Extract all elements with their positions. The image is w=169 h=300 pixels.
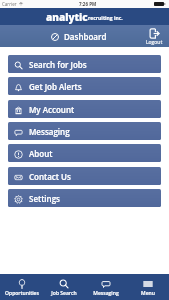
staticText: Menu [141,290,155,297]
staticText: recruiting inc. [88,15,123,22]
staticText: About [29,148,53,159]
button[interactable]: About [8,144,161,162]
staticText: Job Search [51,290,77,297]
staticText: Contact Us [29,171,71,182]
button[interactable]: Opportunities [0,274,43,300]
button[interactable]: Job Search [43,274,85,300]
staticText: Messaging [29,126,70,137]
button[interactable]: My Account [8,100,161,118]
button[interactable]: Messaging [8,122,161,140]
staticText: Dashboard [64,31,107,42]
staticText: Opportunities [5,290,39,297]
staticText: Logout [146,39,163,46]
button[interactable]: Settings [8,189,161,207]
staticText: Get Job Alerts [29,81,82,92]
staticText: Carrier [2,1,17,7]
button[interactable]: Logout [146,28,169,46]
button[interactable]: Contact Us [8,167,161,185]
button[interactable]: Messaging [85,274,127,300]
button[interactable]: Search for Jobs [8,55,161,73]
staticText: Settings [29,193,60,204]
staticText: 7:26 PM [79,1,97,7]
button[interactable]: Menu [127,274,169,300]
staticText: My Account [29,104,75,115]
button[interactable]: Get Job Alerts [8,77,161,95]
staticText: analytic [46,10,88,24]
staticText: Messaging [93,290,119,297]
staticText: Search for Jobs [29,59,87,70]
